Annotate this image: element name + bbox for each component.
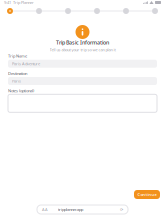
staticText: Trip Basic Information	[56, 39, 109, 46]
staticText: Paris	[12, 78, 21, 84]
staticText: Destination	[8, 71, 27, 76]
staticText: Notes (optional)	[8, 88, 34, 93]
staticText: AA	[42, 207, 48, 212]
staticText: Continue	[137, 192, 156, 197]
button[interactable]: Continue	[134, 190, 160, 199]
button[interactable]: AA	[37, 205, 128, 214]
staticText: ⟳	[120, 207, 123, 212]
staticText: Tell us about your trip so we can plan i…	[49, 47, 115, 52]
staticText: tripplanner.app	[58, 207, 83, 212]
staticText: Paris Adventure	[12, 61, 40, 66]
staticText: 9:41 Trip Planner	[4, 0, 34, 5]
staticText: Trip Name	[8, 53, 27, 59]
